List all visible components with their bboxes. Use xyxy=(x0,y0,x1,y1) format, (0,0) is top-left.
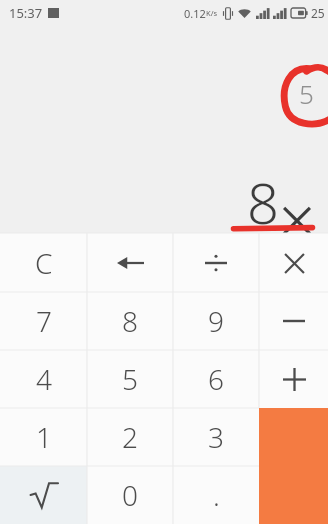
button[interactable]: 9 xyxy=(173,292,259,350)
staticText: 8 xyxy=(247,164,279,240)
staticText: 5 xyxy=(122,360,138,398)
button[interactable]: Plus xyxy=(259,350,328,408)
other: Divide xyxy=(198,245,234,281)
other: Plus xyxy=(276,361,312,397)
button[interactable]: 3 xyxy=(173,408,259,466)
button[interactable]: Minus xyxy=(259,292,328,350)
other: Multiply xyxy=(276,245,312,281)
staticText: 8 xyxy=(122,302,138,340)
button[interactable]: 0 xyxy=(87,466,173,524)
staticText: 3 xyxy=(208,418,224,456)
button[interactable]: 7 xyxy=(0,292,87,350)
other: Minus xyxy=(276,303,312,339)
staticText: 5 xyxy=(299,76,314,111)
staticText: 15:37 xyxy=(9,4,43,22)
button[interactable]: C xyxy=(0,233,87,292)
button[interactable]: Multiply xyxy=(259,233,328,292)
staticText: K/s xyxy=(206,8,218,18)
button[interactable]: 4 xyxy=(0,350,87,408)
staticText: 0.12 xyxy=(184,6,206,21)
staticText: 9 xyxy=(208,302,224,340)
button[interactable]: Divide xyxy=(173,233,259,292)
staticText: C xyxy=(35,244,53,282)
staticText: . xyxy=(213,476,220,514)
staticText: 1 xyxy=(36,418,52,456)
staticText: 2 xyxy=(122,418,138,456)
button[interactable]: 8 xyxy=(87,292,173,350)
button[interactable]: . xyxy=(173,466,259,524)
staticText: 0 xyxy=(122,476,138,514)
staticText: 7 xyxy=(36,302,52,340)
button[interactable]: Square root xyxy=(0,466,87,524)
button[interactable]: 2 xyxy=(87,408,173,466)
staticText: 25 xyxy=(311,5,325,21)
other: Backspace xyxy=(112,245,148,281)
other: Square root xyxy=(24,475,64,515)
button[interactable]: 6 xyxy=(173,350,259,408)
button[interactable]: 1 xyxy=(0,408,87,466)
button[interactable]: 5 xyxy=(87,350,173,408)
button[interactable]: Backspace xyxy=(87,233,173,292)
staticText: 6 xyxy=(208,360,224,398)
staticText: 4 xyxy=(36,360,52,398)
